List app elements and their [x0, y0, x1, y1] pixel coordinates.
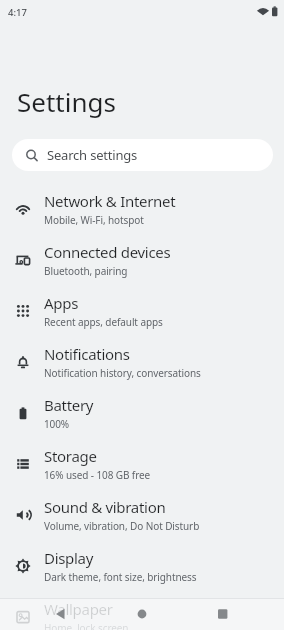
button[interactable]: Connected devices — [0, 234, 284, 285]
button[interactable] — [0, 598, 94, 630]
staticText: 16% used - 108 GB free — [44, 468, 151, 482]
staticText: 4:17 — [8, 6, 27, 19]
button[interactable]: Notifications — [0, 336, 284, 387]
staticText: Network & Internet — [44, 191, 176, 211]
staticText: Apps — [44, 293, 79, 313]
staticText: Storage — [44, 446, 97, 466]
button[interactable] — [189, 598, 284, 630]
staticText: Notifications — [44, 344, 130, 364]
button[interactable]: Display — [0, 540, 284, 591]
staticText: Search settings — [47, 146, 138, 164]
staticText: Volume, vibration, Do Not Disturb — [44, 519, 200, 533]
button[interactable]: Wallpaper — [0, 591, 284, 630]
staticText: Sound & vibration — [44, 497, 166, 517]
button[interactable]: Sound & vibration — [0, 489, 284, 540]
button[interactable]: Storage — [0, 438, 284, 489]
staticText: Recent apps, default apps — [44, 315, 163, 329]
button[interactable]: Apps — [0, 285, 284, 336]
staticText: Home, lock screen — [44, 621, 129, 630]
staticText: Bluetooth, pairing — [44, 264, 128, 278]
button[interactable] — [94, 598, 189, 630]
staticText: Dark theme, font size, brightness — [44, 570, 197, 584]
button[interactable]: Network & Internet — [0, 183, 284, 234]
staticText: Battery — [44, 395, 94, 415]
staticText: Settings — [17, 84, 116, 119]
staticText: Display — [44, 548, 94, 568]
button[interactable]: Search settings — [12, 139, 273, 171]
staticText: Mobile, Wi-Fi, hotspot — [44, 213, 144, 227]
staticText: Wallpaper — [44, 599, 113, 619]
staticText: 100% — [44, 417, 70, 431]
staticText: Connected devices — [44, 242, 171, 262]
staticText: Notification history, conversations — [44, 366, 201, 380]
button[interactable]: Battery — [0, 387, 284, 438]
